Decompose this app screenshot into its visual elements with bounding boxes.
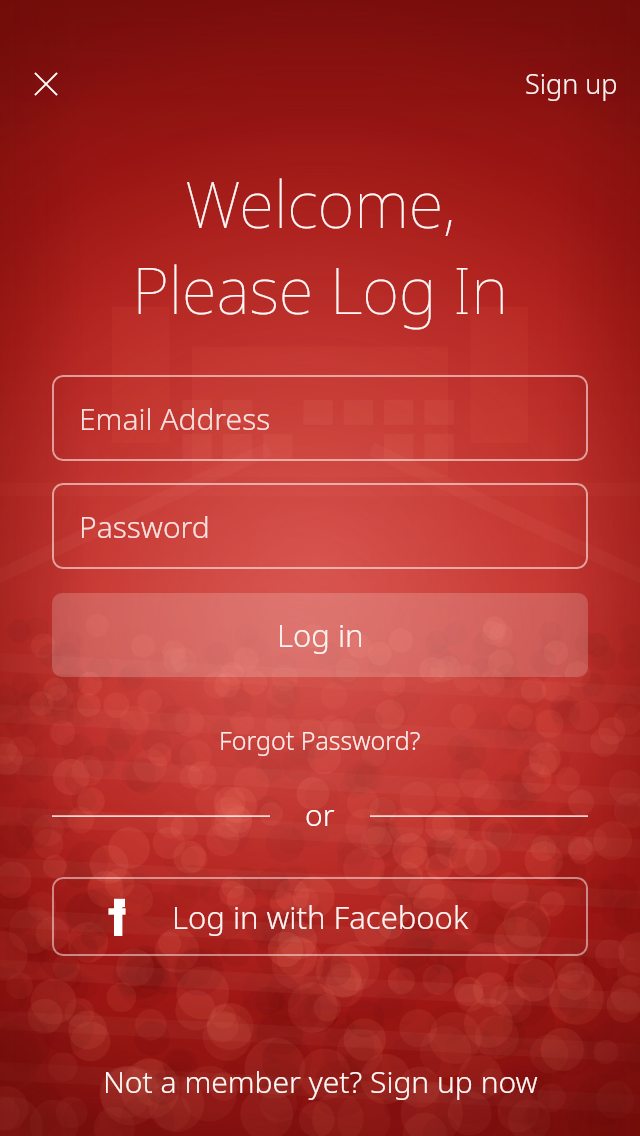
- button[interactable]: Forgot Password?: [170, 716, 470, 764]
- staticText: Welcome, Please Log In: [132, 160, 508, 330]
- button[interactable]: Email Address: [52, 375, 588, 461]
- staticText: or: [305, 794, 335, 835]
- staticText: Email Address: [79, 398, 271, 439]
- staticText: Log in: [277, 614, 364, 656]
- button[interactable]: Sign up: [508, 58, 618, 108]
- button[interactable]: Not a member yet? Sign up now: [40, 1052, 600, 1110]
- staticText: Not a member yet? Sign up now: [103, 1061, 538, 1102]
- staticText: Sign up: [525, 65, 618, 102]
- staticText: Log in with Facebook: [172, 896, 469, 938]
- staticText: Forgot Password?: [219, 723, 421, 757]
- staticText: Password: [79, 506, 210, 547]
- button[interactable]: Close: [22, 60, 70, 108]
- button[interactable]: Log in with Facebook: [52, 877, 588, 956]
- button[interactable]: Log in: [52, 593, 588, 677]
- button[interactable]: Password: [52, 483, 588, 569]
